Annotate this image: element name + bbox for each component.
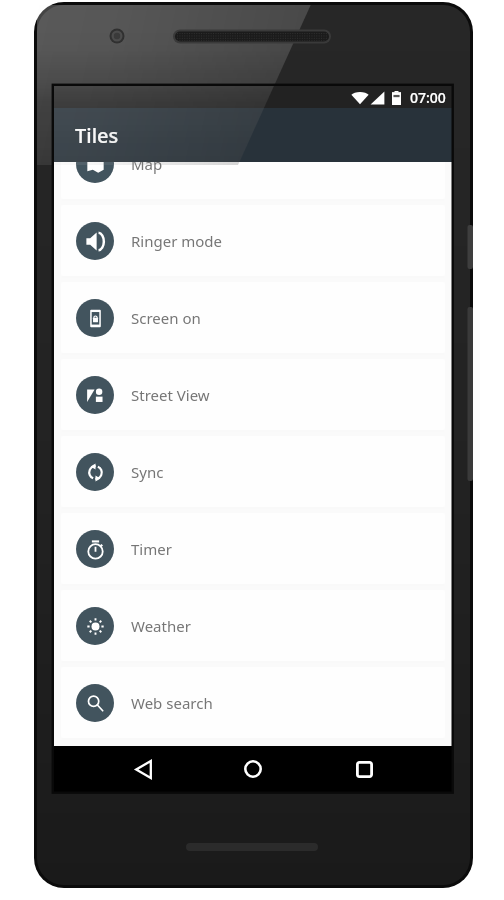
button[interactable]: Map <box>61 162 445 199</box>
button[interactable]: Back <box>121 747 165 791</box>
button[interactable]: Weather <box>61 590 445 661</box>
button[interactable]: Sync <box>61 436 445 507</box>
button[interactable]: Ringer mode <box>61 205 445 276</box>
staticText: Map <box>131 162 163 174</box>
button[interactable]: Screen on <box>61 282 445 353</box>
staticText: Ringer mode <box>131 231 223 251</box>
staticText: 07:00 <box>410 88 446 107</box>
staticText: Tiles <box>75 122 119 149</box>
staticText: Web search <box>131 693 213 713</box>
staticText: Weather <box>131 616 191 636</box>
staticText: Street View <box>131 385 210 405</box>
staticText: Screen on <box>131 308 201 328</box>
button[interactable]: Timer <box>61 513 445 584</box>
button[interactable]: Recents <box>342 747 386 791</box>
button[interactable]: Street View <box>61 359 445 430</box>
staticText: Sync <box>131 462 164 482</box>
button[interactable]: Home <box>231 747 275 791</box>
button[interactable]: Web search <box>61 667 445 738</box>
staticText: Timer <box>131 539 172 559</box>
